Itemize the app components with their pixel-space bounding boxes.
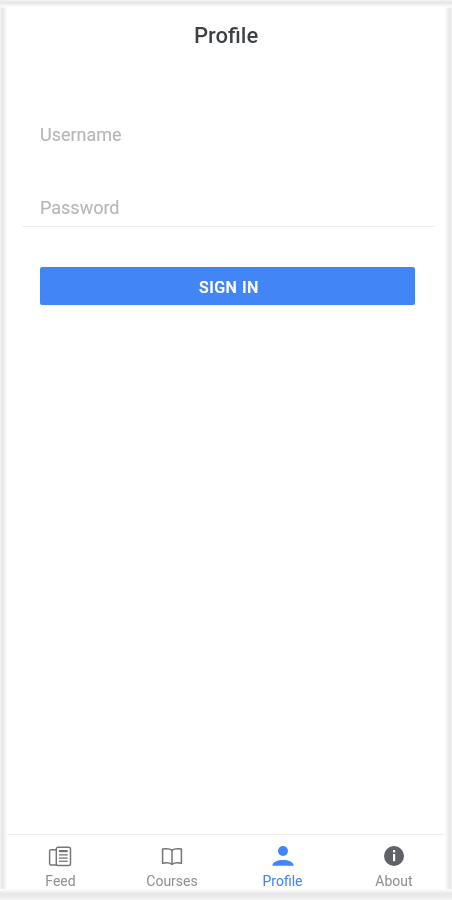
button[interactable]: Password <box>22 184 435 230</box>
staticText: Courses <box>146 873 198 889</box>
button[interactable]: Profile <box>227 835 338 893</box>
staticText: About <box>375 873 413 889</box>
button[interactable]: About <box>338 835 449 893</box>
staticText: Profile <box>262 873 303 889</box>
staticText: Feed <box>45 873 76 889</box>
button[interactable]: SIGN IN <box>40 267 415 305</box>
staticText: Password <box>40 197 120 218</box>
button[interactable]: Courses <box>116 835 227 893</box>
staticText: SIGN IN <box>199 278 259 297</box>
staticText: Profile <box>194 23 259 49</box>
staticText: Username <box>40 124 122 145</box>
button[interactable]: Feed <box>4 835 116 893</box>
button[interactable]: Username <box>22 111 435 157</box>
